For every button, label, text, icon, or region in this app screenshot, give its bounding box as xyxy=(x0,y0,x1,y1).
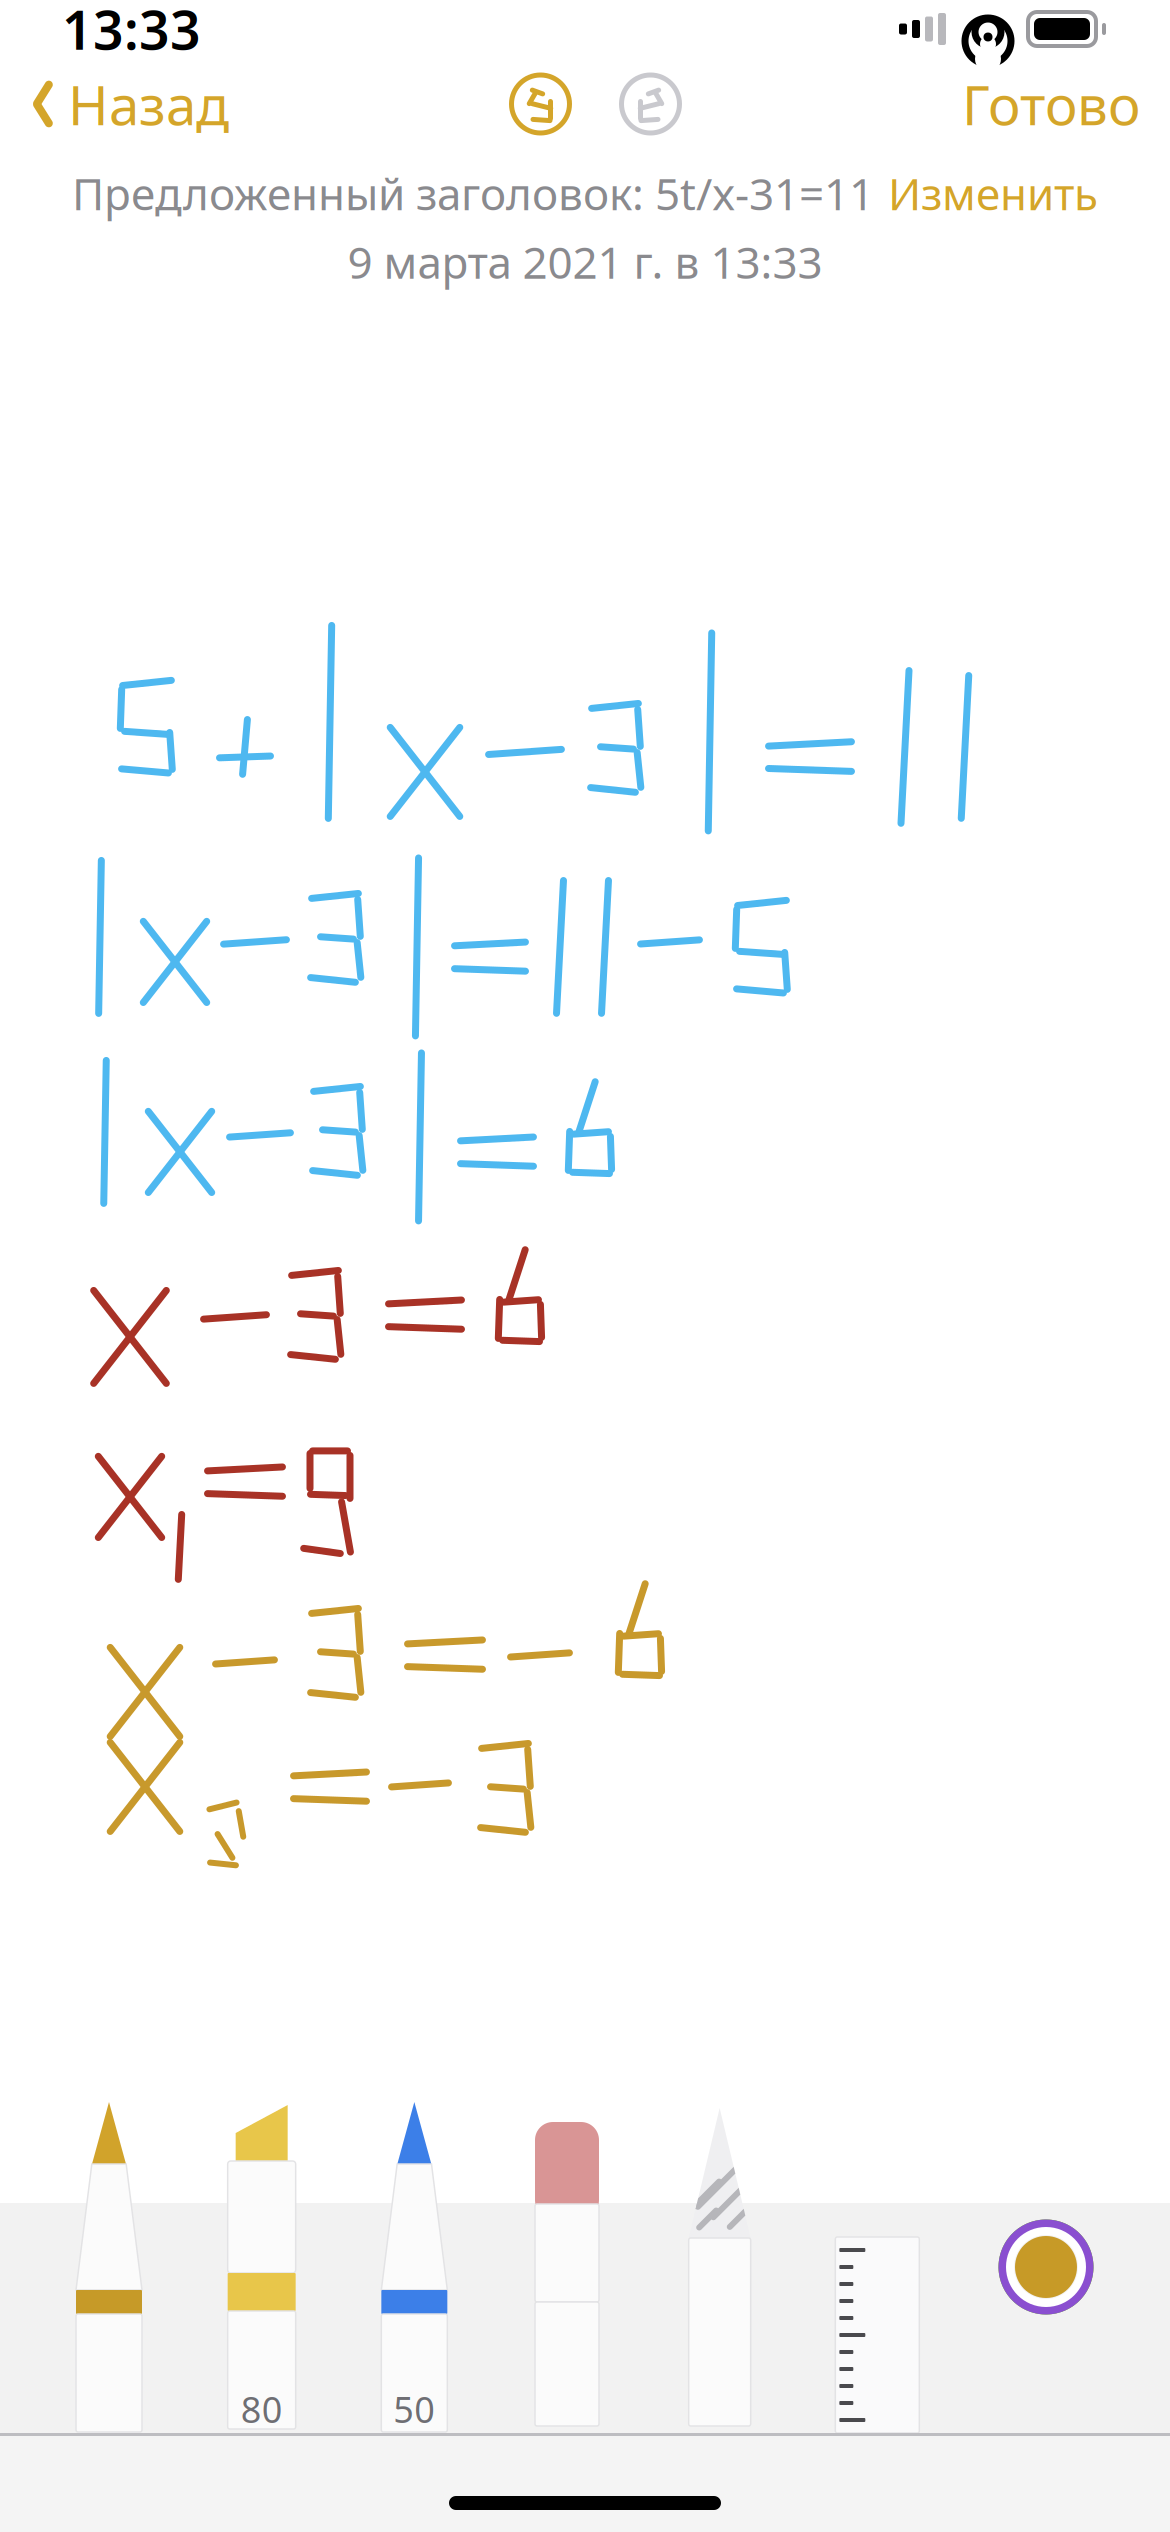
staticText: Предложенный заголовок: 5t/x-31=11 xyxy=(72,164,874,222)
button[interactable]: Маркер xyxy=(225,2101,299,2433)
button[interactable]: Назад xyxy=(24,58,235,150)
staticText: Изменить xyxy=(888,164,1098,222)
button[interactable]: Изменить xyxy=(888,164,1098,222)
staticText: 13:33 xyxy=(62,0,201,64)
staticText: Назад xyxy=(68,68,229,140)
button[interactable]: Лассо xyxy=(683,2101,757,2433)
button[interactable]: Ластик xyxy=(530,2101,604,2433)
button[interactable]: Цвет xyxy=(998,2219,1094,2315)
button[interactable]: Отменить xyxy=(501,65,579,143)
button[interactable]: Линейка xyxy=(835,2101,919,2433)
button[interactable]: Карандаш xyxy=(377,2101,451,2433)
staticText: 50 xyxy=(393,2385,435,2433)
staticText: 9 марта 2021 г. в 13:33 xyxy=(347,232,822,291)
button[interactable]: Ручка xyxy=(72,2101,146,2433)
button[interactable]: Повторить xyxy=(611,65,689,143)
button[interactable]: Готово xyxy=(956,58,1146,150)
staticText: Готово xyxy=(962,68,1140,140)
staticText: 80 xyxy=(241,2385,283,2433)
